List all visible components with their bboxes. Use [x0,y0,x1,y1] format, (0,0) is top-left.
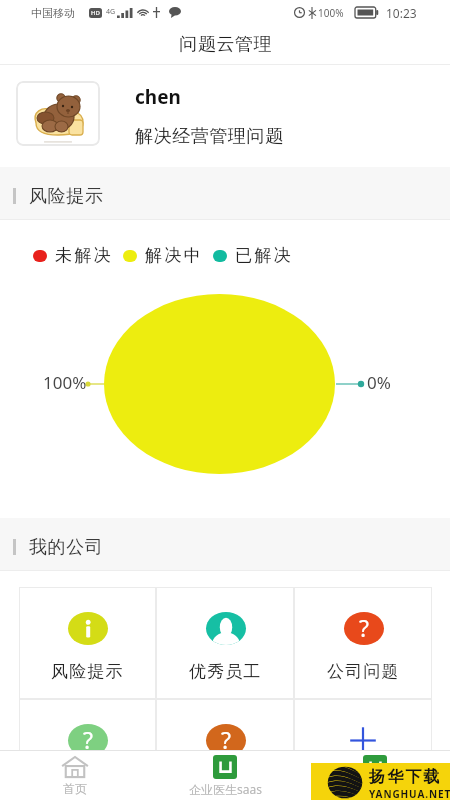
staticText: 首页 [63,781,87,796]
staticText: 我的问题 [189,773,262,794]
staticText: 10:23 [386,5,417,21]
button[interactable]: 添加 [294,699,432,800]
button[interactable]: ? [19,699,156,800]
staticText: 已解决 [235,245,294,266]
button[interactable]: ? [294,587,432,699]
staticText: 解决中 [145,245,204,266]
staticText: 优秀员工 [189,661,262,682]
staticText: YANGHUA.NET [369,787,450,800]
staticText: ? [359,612,369,643]
button[interactable]: 优秀员工 [156,587,294,699]
button[interactable]: 首页 [0,751,150,800]
button[interactable]: 企业医生saas [150,751,300,800]
staticText: ? [83,724,93,755]
staticText: 100% [318,6,344,20]
staticText: 100% [43,371,87,394]
staticText: HD [91,9,100,17]
staticText: 解决经营管理问题 [135,125,284,148]
staticText: 未解决 [55,245,114,266]
staticText: ? [221,724,231,755]
staticText: 风险提示 [29,185,104,208]
staticText: 中国移动 [31,6,75,20]
staticText: 问题云管理 [179,33,272,56]
staticText: 我的 [363,781,387,796]
button[interactable]: chen [0,65,450,167]
button[interactable]: 我的 [300,751,450,800]
staticText: 0% [367,371,391,394]
staticText: 风险提示 [51,661,124,682]
staticText: 企业医生saas [189,781,262,797]
staticText: chen [135,84,181,110]
staticText: 行业问题 [51,773,124,794]
staticText: 扬华下载 [369,767,442,787]
staticText: 公司问题 [327,661,400,682]
staticText: 4G [106,7,116,17]
staticText: 添加 [345,773,382,794]
staticText: 我的公司 [29,536,104,559]
button[interactable]: ? [156,699,294,800]
button[interactable]: 风险提示 [19,587,156,699]
